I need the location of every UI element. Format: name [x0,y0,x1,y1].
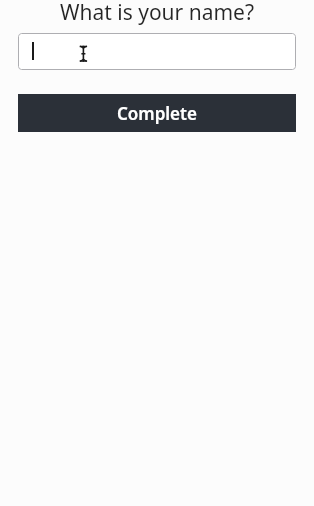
button[interactable]: Name input field [18,33,296,70]
staticText: What is your name? [0,0,314,27]
button[interactable]: Complete [18,94,296,132]
staticText: Complete [117,102,197,125]
